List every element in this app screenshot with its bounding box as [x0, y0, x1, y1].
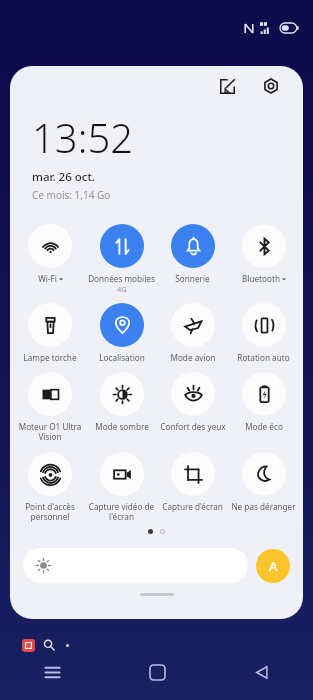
staticText: A — [269, 557, 278, 575]
staticText: Ne pas déranger — [231, 501, 296, 512]
staticText: Localisation — [99, 352, 145, 363]
staticText: Ce mois: 1,14 Go — [32, 188, 111, 202]
button[interactable]: Lampe torche — [14, 303, 86, 363]
staticText: 4G — [117, 284, 127, 294]
staticText: Mode avion — [170, 352, 216, 363]
staticText: 13:52 — [32, 110, 134, 164]
button[interactable]: Rotation auto — [228, 303, 299, 363]
staticText: Confort des yeux — [160, 421, 226, 432]
staticText: Rotation auto — [237, 352, 290, 363]
staticText: mar. 26 oct. — [32, 169, 95, 185]
staticText: Wi-Fi — [38, 273, 57, 284]
button[interactable]: Recents — [0, 644, 105, 700]
staticText: Mode sombre — [95, 421, 149, 432]
button[interactable]: Mode avion — [157, 303, 228, 363]
button[interactable]: App — [22, 639, 35, 652]
button[interactable]: Auto brightness — [256, 549, 290, 583]
button[interactable]: Back — [209, 644, 313, 700]
staticText: Sonnerie — [175, 273, 210, 284]
button[interactable]: Brightness — [23, 548, 248, 583]
staticText: Données mobiles — [88, 273, 155, 284]
staticText: Capture vidéo de l'écran — [87, 501, 156, 523]
button[interactable]: Home — [105, 644, 209, 700]
staticText: Point d'accès personnel — [15, 501, 85, 523]
staticText: Bluetooth — [242, 273, 280, 284]
button[interactable]: Edit — [213, 72, 241, 100]
button[interactable]: Mode éco — [228, 372, 299, 432]
button[interactable]: Capture d'écran — [157, 452, 228, 512]
staticText: Capture d'écran — [162, 501, 223, 512]
button[interactable]: Données mobiles — [86, 224, 157, 294]
button[interactable]: Moteur O1 Ultra Vision — [14, 372, 86, 443]
button[interactable]: Wi-Fi — [14, 224, 86, 284]
button[interactable]: Capture vidéo de l'écran — [86, 452, 157, 523]
button[interactable]: Point d'accès personnel — [14, 452, 86, 523]
staticText: Mode éco — [245, 421, 283, 432]
button[interactable]: Confort des yeux — [157, 372, 228, 432]
button[interactable]: Sonnerie — [157, 224, 228, 284]
button[interactable]: Search — [42, 638, 56, 652]
staticText: Lampe torche — [23, 352, 77, 363]
button[interactable]: Mode sombre — [86, 372, 157, 432]
staticText: Moteur O1 Ultra Vision — [15, 421, 85, 443]
button[interactable]: Ne pas déranger — [228, 452, 299, 512]
button[interactable]: Localisation — [86, 303, 157, 363]
button[interactable]: Settings — [257, 72, 285, 100]
button[interactable]: Bluetooth — [228, 224, 299, 284]
